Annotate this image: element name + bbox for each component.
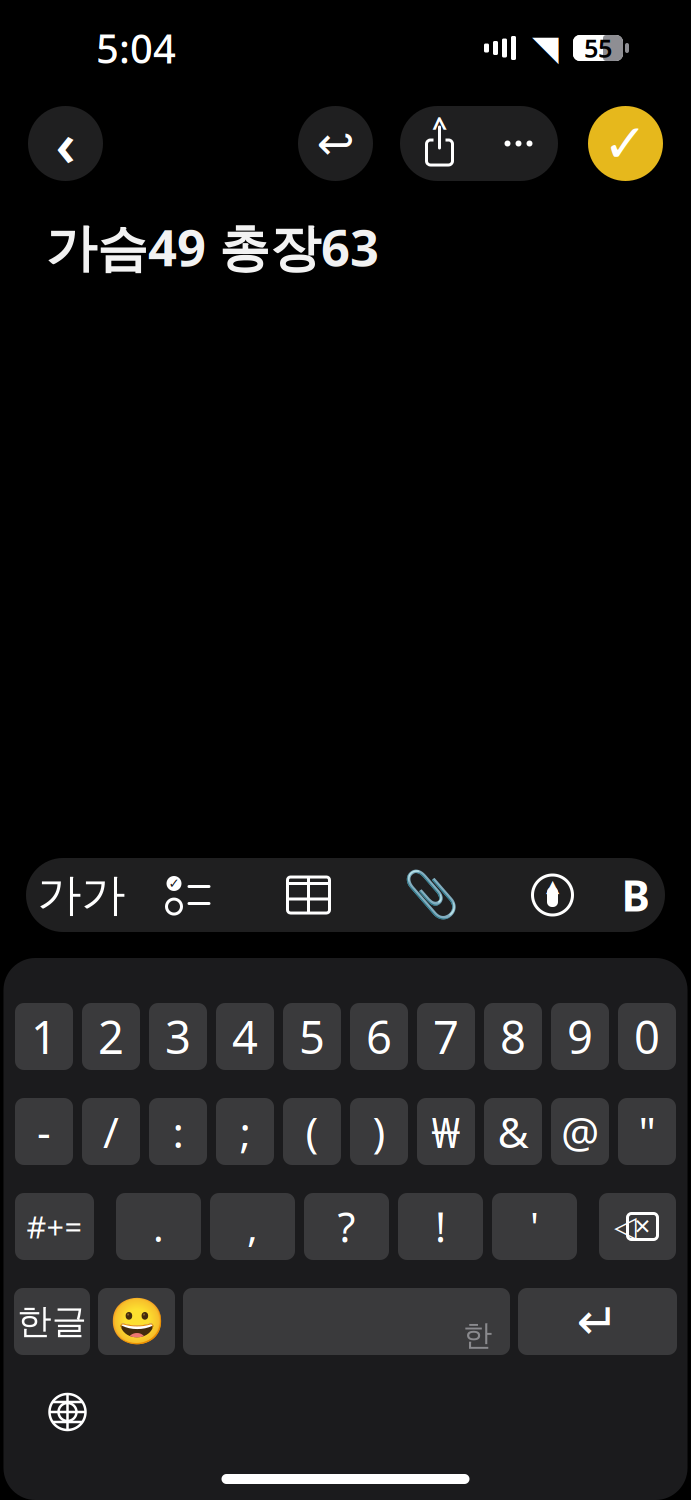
button[interactable]: ? xyxy=(304,1193,389,1260)
button[interactable]: ) xyxy=(350,1098,408,1165)
staticText: 😀 xyxy=(108,1296,164,1347)
button[interactable]: Table xyxy=(247,858,369,932)
button[interactable]: 2 xyxy=(82,1003,140,1070)
staticText: ! xyxy=(435,1199,446,1254)
staticText: / xyxy=(103,1103,119,1160)
staticText: . xyxy=(153,1200,164,1253)
staticText: ' xyxy=(530,1200,539,1253)
button[interactable]: Done xyxy=(588,106,663,181)
staticText: 0 xyxy=(634,1006,660,1067)
staticText: @ xyxy=(561,1103,599,1160)
staticText: : xyxy=(172,1103,183,1160)
button[interactable]: ! xyxy=(398,1193,483,1260)
staticText: 8 xyxy=(500,1006,526,1067)
button[interactable]: . xyxy=(116,1193,201,1260)
staticText: , xyxy=(247,1200,258,1253)
staticText: 1 xyxy=(31,1006,57,1067)
button[interactable]: Markup xyxy=(491,858,613,932)
staticText: ✓ xyxy=(603,113,648,174)
staticText: ▲ xyxy=(546,876,559,896)
button[interactable]: , xyxy=(210,1193,295,1260)
staticText: ₩ xyxy=(431,1103,460,1160)
staticText: 한글 xyxy=(17,1300,87,1343)
staticText: ? xyxy=(337,1199,355,1254)
button[interactable]: Undo xyxy=(298,106,373,181)
staticText: 2 xyxy=(98,1006,124,1067)
button[interactable]: - xyxy=(15,1098,73,1165)
staticText: & xyxy=(497,1103,528,1160)
staticText: - xyxy=(37,1103,51,1160)
button[interactable]: 8 xyxy=(484,1003,542,1070)
button[interactable]: 0 xyxy=(618,1003,676,1070)
button[interactable]: ₩ xyxy=(417,1098,475,1165)
button[interactable]: ' xyxy=(492,1193,577,1260)
button[interactable]: Attach xyxy=(369,858,491,932)
staticText: 55 xyxy=(584,31,612,65)
staticText: 5:04 xyxy=(96,21,176,74)
button[interactable]: & xyxy=(484,1098,542,1165)
button[interactable]: / xyxy=(82,1098,140,1165)
staticText: 가슴49 총장63 xyxy=(46,213,379,280)
staticText: 📎 xyxy=(402,869,458,921)
staticText: " xyxy=(638,1103,655,1160)
button[interactable]: Emoji xyxy=(98,1288,175,1355)
staticText: ✕ xyxy=(633,1214,651,1239)
staticText: ◁ xyxy=(614,1210,637,1243)
staticText: ↵ xyxy=(576,1293,618,1350)
staticText: 6 xyxy=(366,1006,392,1067)
button[interactable]: Return xyxy=(518,1288,677,1355)
button[interactable]: Delete xyxy=(599,1193,676,1260)
button[interactable]: 3 xyxy=(149,1003,207,1070)
button[interactable]: Back xyxy=(28,106,103,181)
staticText: 한 xyxy=(463,1317,492,1353)
button[interactable]: : xyxy=(149,1098,207,1165)
staticText: ( xyxy=(305,1103,318,1160)
button[interactable]: Next keyboard xyxy=(36,1381,98,1443)
staticText: 5 xyxy=(299,1006,325,1067)
button[interactable]: More formatting xyxy=(613,858,657,932)
button[interactable]: 4 xyxy=(216,1003,274,1070)
staticText: 7 xyxy=(433,1006,459,1067)
button[interactable]: 5 xyxy=(283,1003,341,1070)
button[interactable]: 9 xyxy=(551,1003,609,1070)
button[interactable]: Share xyxy=(400,106,479,181)
staticText: B xyxy=(621,867,649,923)
staticText: ◥ xyxy=(532,28,559,68)
staticText: ‹ xyxy=(55,104,75,182)
button[interactable]: 1 xyxy=(15,1003,73,1070)
button[interactable]: 7 xyxy=(417,1003,475,1070)
staticText: ↩ xyxy=(316,118,354,169)
button[interactable]: More xyxy=(479,106,558,181)
button[interactable]: Space xyxy=(183,1288,510,1355)
button[interactable]: 한글 xyxy=(14,1288,90,1355)
button[interactable]: Checklist xyxy=(129,858,247,932)
button[interactable]: 6 xyxy=(350,1003,408,1070)
button[interactable]: #+= xyxy=(15,1193,94,1260)
staticText: ^ xyxy=(432,109,447,144)
button[interactable]: ( xyxy=(283,1098,341,1165)
staticText: ✓ xyxy=(168,876,179,891)
button[interactable]: 가가 xyxy=(33,858,129,932)
staticText: ; xyxy=(239,1103,250,1160)
staticText: ) xyxy=(372,1103,385,1160)
staticText: 9 xyxy=(567,1006,593,1067)
staticText: 가가 xyxy=(37,868,125,922)
button[interactable]: " xyxy=(618,1098,676,1165)
button[interactable]: @ xyxy=(551,1098,609,1165)
button[interactable]: ; xyxy=(216,1098,274,1165)
staticText: 3 xyxy=(165,1006,191,1067)
staticText: #+= xyxy=(26,1206,82,1247)
staticText: 4 xyxy=(232,1006,258,1067)
